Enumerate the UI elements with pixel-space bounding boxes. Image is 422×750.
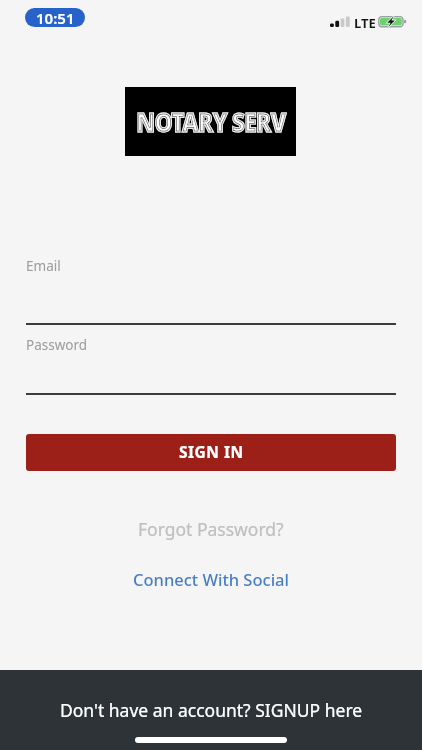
staticText: LTE xyxy=(354,14,376,32)
staticText: Connect With Social xyxy=(133,568,289,590)
staticText: NOTARY SERV xyxy=(136,104,286,139)
staticText: NOTARY SERV xyxy=(136,104,286,139)
staticText: SIGN IN xyxy=(179,441,244,462)
button[interactable]: Don't have an account? SIGNUP here xyxy=(0,670,422,737)
other: Battery charging xyxy=(378,15,407,28)
staticText: Forgot Password? xyxy=(138,517,284,541)
staticText: Email xyxy=(26,257,61,275)
button[interactable]: Password xyxy=(26,332,396,399)
button[interactable]: SIGN IN xyxy=(26,434,396,471)
staticText: Don't have an account? SIGNUP here xyxy=(60,698,363,722)
button[interactable]: Email xyxy=(26,253,396,329)
staticText: Password xyxy=(26,336,88,354)
staticText: NOTARY SERV xyxy=(136,104,286,139)
other: Cellular signal strength xyxy=(330,16,350,27)
button[interactable]: Forgot Password? xyxy=(122,512,300,546)
button[interactable]: Connect With Social xyxy=(117,563,305,595)
staticText: 10:51 xyxy=(36,8,75,27)
